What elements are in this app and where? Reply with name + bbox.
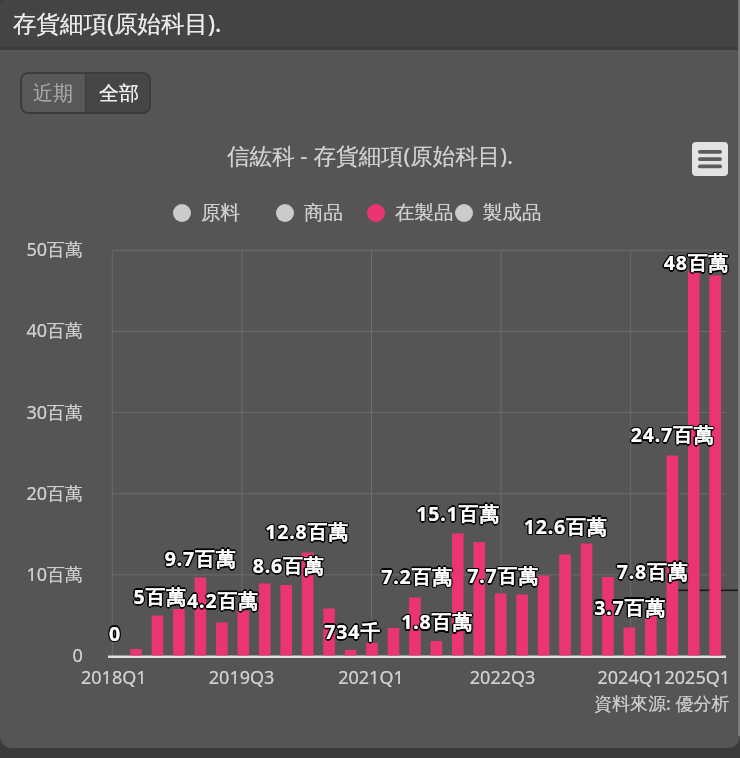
staticText: 原料 — [201, 200, 240, 225]
staticText: 信紘科 - 存貨細項(原始科目). — [227, 140, 513, 171]
button[interactable]: 存貨細項(原始科目). — [0, 0, 740, 47]
staticText: 全部 — [99, 81, 139, 106]
staticText: 在製品 — [395, 200, 454, 225]
staticText: 近期 — [33, 81, 73, 106]
staticText: 商品 — [304, 200, 343, 225]
staticText: 製成品 — [483, 200, 542, 225]
button[interactable]: Chart menu — [692, 142, 728, 176]
button[interactable]: 製成品 — [455, 200, 542, 225]
staticText: 資料來源: 優分析 — [594, 691, 730, 716]
staticText: 存貨細項(原始科目). — [13, 7, 222, 39]
button[interactable]: 商品 — [276, 200, 343, 225]
button[interactable]: 在製品 — [367, 200, 454, 225]
button[interactable]: 全部 — [86, 72, 151, 114]
button[interactable]: 近期 — [20, 72, 85, 114]
button[interactable]: 原料 — [173, 200, 240, 225]
